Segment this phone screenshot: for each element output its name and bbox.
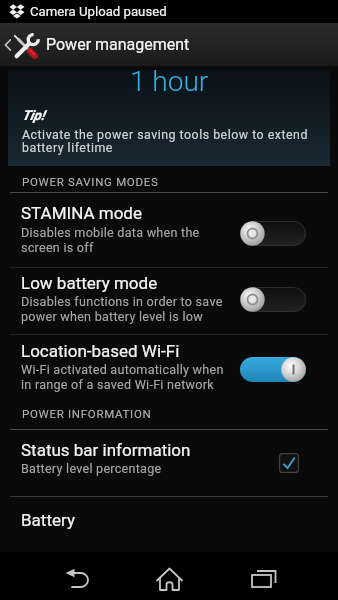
button[interactable] <box>227 552 299 600</box>
staticText: STAMINA mode <box>21 203 142 223</box>
button[interactable] <box>0 497 338 552</box>
button[interactable] <box>0 194 338 267</box>
staticText: POWER SAVING MODES <box>22 175 159 188</box>
staticText: POWER INFORMATION <box>22 407 152 420</box>
staticText: Camera Upload paused <box>30 4 167 19</box>
staticText: Battery <box>21 510 75 530</box>
button[interactable] <box>0 335 338 397</box>
button[interactable] <box>8 70 330 166</box>
button[interactable] <box>0 268 338 334</box>
staticText: 1 hour <box>130 65 209 98</box>
button[interactable] <box>133 552 205 600</box>
staticText: Wi-Fi activated automatically when in ra… <box>21 362 224 392</box>
button[interactable] <box>0 23 338 67</box>
staticText: Tip! <box>22 107 45 123</box>
staticText: Location-based Wi-Fi <box>21 341 180 361</box>
staticText: Disables mobile data when the screen is … <box>21 225 200 255</box>
staticText: Status bar information <box>21 440 191 460</box>
staticText: Low battery mode <box>21 273 158 293</box>
button[interactable] <box>40 552 112 600</box>
staticText: Disables functions in order to save powe… <box>21 294 223 324</box>
staticText: Power management <box>46 35 190 54</box>
button[interactable] <box>0 430 338 496</box>
staticText: Battery level percentage <box>21 461 162 476</box>
staticText: Activate the power saving tools below to… <box>22 127 308 155</box>
